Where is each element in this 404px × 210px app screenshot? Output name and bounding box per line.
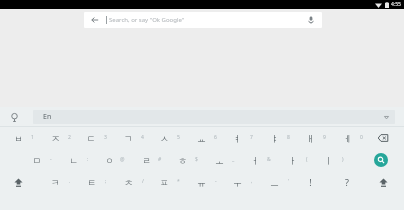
staticText: 9 xyxy=(323,134,326,141)
staticText: ㅏ xyxy=(288,155,297,166)
button[interactable]: Shift xyxy=(1,171,35,193)
staticText: ㄹ xyxy=(142,155,151,166)
staticText: ㅑ xyxy=(270,133,279,144)
staticText: ㅈ xyxy=(51,133,60,144)
button[interactable]: ㅓ xyxy=(238,149,272,171)
button[interactable]: ㅜ xyxy=(220,171,254,193)
button[interactable]: ㅛ xyxy=(184,127,218,149)
button[interactable]: ㅣ xyxy=(311,149,345,171)
staticText: , xyxy=(251,178,253,185)
button[interactable]: ㅎ xyxy=(165,149,199,171)
button[interactable]: Back xyxy=(84,12,322,28)
staticText: ㄴ xyxy=(69,155,78,166)
button[interactable]: ! xyxy=(293,171,327,193)
staticText: En xyxy=(43,112,52,122)
button[interactable]: ㅈ xyxy=(38,127,72,149)
staticText: @ xyxy=(120,156,125,163)
staticText: $ xyxy=(195,156,198,163)
button[interactable]: Search xyxy=(366,149,396,171)
staticText: ㅂ xyxy=(14,133,23,144)
staticText: ㅠ xyxy=(197,177,206,188)
button[interactable]: ㄴ xyxy=(56,149,90,171)
button[interactable]: Voice search xyxy=(306,15,316,25)
staticText: ㅡ xyxy=(270,177,279,188)
button[interactable]: Backspace xyxy=(366,127,400,149)
button[interactable]: ㅗ xyxy=(202,149,236,171)
button[interactable]: ㅊ xyxy=(111,171,145,193)
staticText: 1 xyxy=(31,134,34,141)
staticText: - xyxy=(215,178,217,185)
staticText: ! xyxy=(309,176,312,188)
button[interactable]: ㄷ xyxy=(74,127,108,149)
button[interactable]: ㅇ xyxy=(92,149,126,171)
button[interactable]: ? xyxy=(330,171,364,193)
staticText: ㅣ xyxy=(324,155,333,166)
staticText: : xyxy=(87,156,89,163)
button[interactable]: ㅂ xyxy=(1,127,35,149)
staticText: * xyxy=(177,178,180,185)
staticText: ㅕ xyxy=(233,133,242,144)
button[interactable]: ㅍ xyxy=(147,171,181,193)
staticText: ㅗ xyxy=(215,155,224,166)
button[interactable]: ㅕ xyxy=(220,127,254,149)
button[interactable]: ㅁ xyxy=(19,149,53,171)
staticText: 4 xyxy=(141,134,144,141)
button[interactable]: Suggestions xyxy=(9,112,20,123)
other: Shift xyxy=(14,178,23,187)
button[interactable]: ㅌ xyxy=(74,171,108,193)
staticText: ㅊ xyxy=(124,177,133,188)
button[interactable]: ㅅ xyxy=(147,127,181,149)
button[interactable]: ㅏ xyxy=(275,149,309,171)
button[interactable]: ㅔ xyxy=(330,127,364,149)
button[interactable]: ㅑ xyxy=(257,127,291,149)
staticText: 3 xyxy=(104,134,107,141)
button[interactable]: ㅋ xyxy=(38,171,72,193)
staticText: 2 xyxy=(68,134,71,141)
staticText: ㅇ xyxy=(105,155,114,166)
button[interactable]: ㅡ xyxy=(257,171,291,193)
button[interactable]: Expand suggestions xyxy=(383,114,390,121)
staticText: ㅐ xyxy=(306,133,315,144)
staticText: ㅔ xyxy=(343,133,352,144)
button[interactable]: ㅠ xyxy=(184,171,218,193)
staticText: 8 xyxy=(287,134,290,141)
staticText: _ xyxy=(232,156,235,163)
staticText: ㅌ xyxy=(87,177,96,188)
staticText: ㅎ xyxy=(178,155,187,166)
staticText: ; xyxy=(105,178,107,185)
staticText: - xyxy=(50,156,52,163)
staticText: ㅁ xyxy=(32,155,41,166)
staticText: ㄱ xyxy=(124,133,133,144)
staticText: ( xyxy=(306,156,308,163)
staticText: 5 xyxy=(177,134,180,141)
staticText: ㅋ xyxy=(51,177,60,188)
staticText: & xyxy=(267,156,271,163)
button[interactable]: En xyxy=(33,110,395,124)
staticText: 6 xyxy=(214,134,217,141)
staticText: ㄷ xyxy=(87,133,96,144)
button[interactable]: Shift xyxy=(366,171,400,193)
button[interactable]: ㄹ xyxy=(129,149,163,171)
staticText: ㅜ xyxy=(233,177,242,188)
staticText: ' xyxy=(288,178,290,185)
other: Shift xyxy=(379,178,388,187)
staticText: # xyxy=(158,156,162,163)
staticText: 0 xyxy=(360,134,363,141)
button[interactable]: Back xyxy=(90,15,100,25)
button[interactable]: ㄱ xyxy=(111,127,145,149)
staticText: ㅍ xyxy=(160,177,169,188)
staticText: ㅓ xyxy=(251,155,260,166)
staticText: ㅅ xyxy=(160,133,169,144)
staticText: 4:55 xyxy=(391,1,401,8)
staticText: ? xyxy=(345,176,349,188)
staticText: . xyxy=(69,178,71,185)
button[interactable]: ㅐ xyxy=(293,127,327,149)
staticText: ) xyxy=(342,156,344,163)
staticText: 7 xyxy=(250,134,253,141)
staticText: ㅛ xyxy=(197,133,206,144)
staticText: / xyxy=(142,178,144,185)
staticText: Search, or say "Ok Google" xyxy=(109,16,185,24)
